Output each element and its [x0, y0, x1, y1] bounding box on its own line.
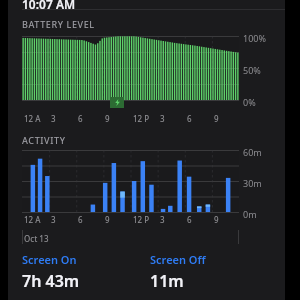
staticText: Oct 13 — [24, 233, 49, 244]
staticText: 9 — [105, 214, 110, 225]
button[interactable]: Screen On — [22, 252, 142, 292]
button[interactable]: Screen Off — [150, 252, 270, 292]
staticText: 9 — [105, 113, 110, 124]
staticText: 30m — [243, 177, 262, 189]
staticText: 6 — [78, 113, 83, 124]
staticText: 3 — [160, 214, 165, 225]
button[interactable] — [22, 150, 239, 212]
staticText: 12 A — [24, 113, 41, 124]
staticText: 9 — [214, 113, 219, 124]
staticText: 60m — [243, 146, 262, 158]
staticText: ACTIVITY — [22, 134, 66, 146]
staticText: 6 — [78, 214, 83, 225]
staticText: 6 — [187, 214, 192, 225]
staticText: 0m — [243, 208, 257, 220]
staticText: BATTERY LEVEL — [22, 18, 95, 30]
button[interactable] — [22, 36, 239, 100]
staticText: 7h 43m — [22, 270, 80, 292]
staticText: 3 — [51, 214, 56, 225]
staticText: 50% — [243, 64, 261, 76]
staticText: 12 P — [133, 113, 150, 124]
staticText: 10:07 AM — [22, 0, 76, 12]
staticText: 12 A — [24, 214, 41, 225]
staticText: 100% — [243, 32, 266, 44]
staticText: 3 — [160, 113, 165, 124]
staticText: 9 — [214, 214, 219, 225]
staticText: 6 — [187, 113, 192, 124]
other: Charging — [110, 97, 124, 108]
staticText: 12 P — [133, 214, 150, 225]
staticText: 0% — [243, 96, 256, 108]
staticText: Screen On — [22, 252, 77, 267]
staticText: Screen Off — [150, 252, 206, 267]
staticText: 11m — [150, 270, 184, 292]
staticText: 3 — [51, 113, 56, 124]
